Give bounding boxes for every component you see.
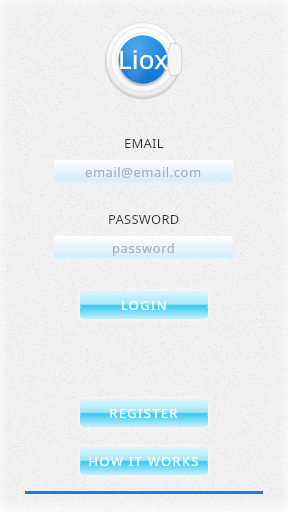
staticText: Liox [118,41,169,76]
staticText: email@email.com [85,163,202,181]
staticText: LOGIN [121,296,168,314]
button[interactable]: REGISTER [76,395,212,431]
staticText: PASSWORD [108,210,180,228]
button[interactable]: LOGIN [76,287,212,323]
button[interactable]: password [54,236,233,259]
staticText: EMAIL [124,134,164,152]
staticText: HOW IT WORKS [88,452,200,470]
button[interactable]: email@email.com [54,160,233,183]
button[interactable]: HOW IT WORKS [76,443,212,479]
staticText: REGISTER [109,404,179,422]
staticText: password [112,239,176,257]
